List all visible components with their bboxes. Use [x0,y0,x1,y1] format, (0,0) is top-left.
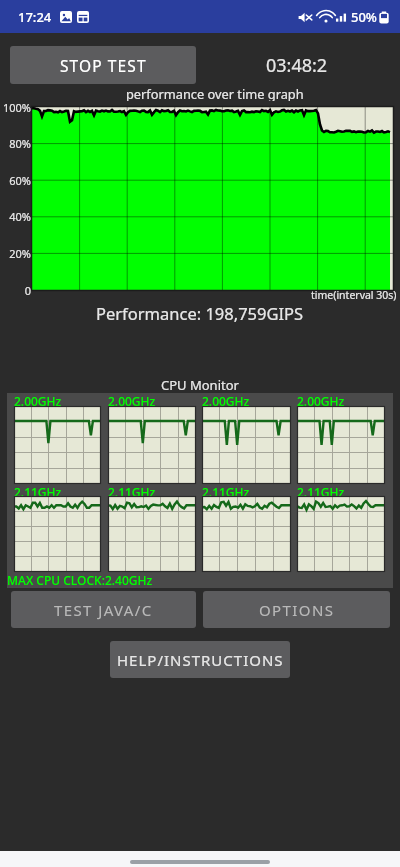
staticText: CPU Monitor [161,376,239,392]
staticText: TEST JAVA/C [54,600,153,620]
staticText: 2.00GHz [14,393,62,409]
other: Wi-Fi [318,10,334,24]
staticText: HELP/INSTRUCTIONS [117,650,284,670]
staticText: 2.11GHz [297,484,345,500]
staticText: 100% [0,100,31,115]
staticText: 2.11GHz [108,484,156,500]
button[interactable]: TEST JAVA/C [11,591,196,628]
staticText: 2.11GHz [202,484,250,500]
staticText: STOP TEST [60,55,147,76]
staticText: 60% [0,173,31,188]
staticText: 03:48:2 [266,53,328,78]
staticText: performance over time graph [126,85,304,101]
staticText: 80% [0,136,31,151]
staticText: Performance: 198,759GIPS [96,302,304,324]
staticText: time(interval 30s) [311,288,397,302]
staticText: 2.11GHz [14,484,62,500]
staticText: 2.00GHz [108,393,156,409]
staticText: MAX CPU CLOCK:2.40GHz [7,572,153,588]
staticText: OPTIONS [259,600,335,620]
button[interactable]: STOP TEST [10,46,196,84]
button[interactable]: HELP/INSTRUCTIONS [110,641,290,678]
staticText: 40% [0,209,31,224]
staticText: 2.00GHz [297,393,345,409]
staticText: 20% [0,246,31,261]
other: Battery 50% [379,10,389,25]
other: Muted [298,10,313,25]
staticText: 2.00GHz [202,393,250,409]
staticText: 50% [351,8,377,26]
staticText: 17:24 [18,8,52,26]
staticText: 0 [0,283,31,298]
button[interactable]: OPTIONS [203,591,390,628]
